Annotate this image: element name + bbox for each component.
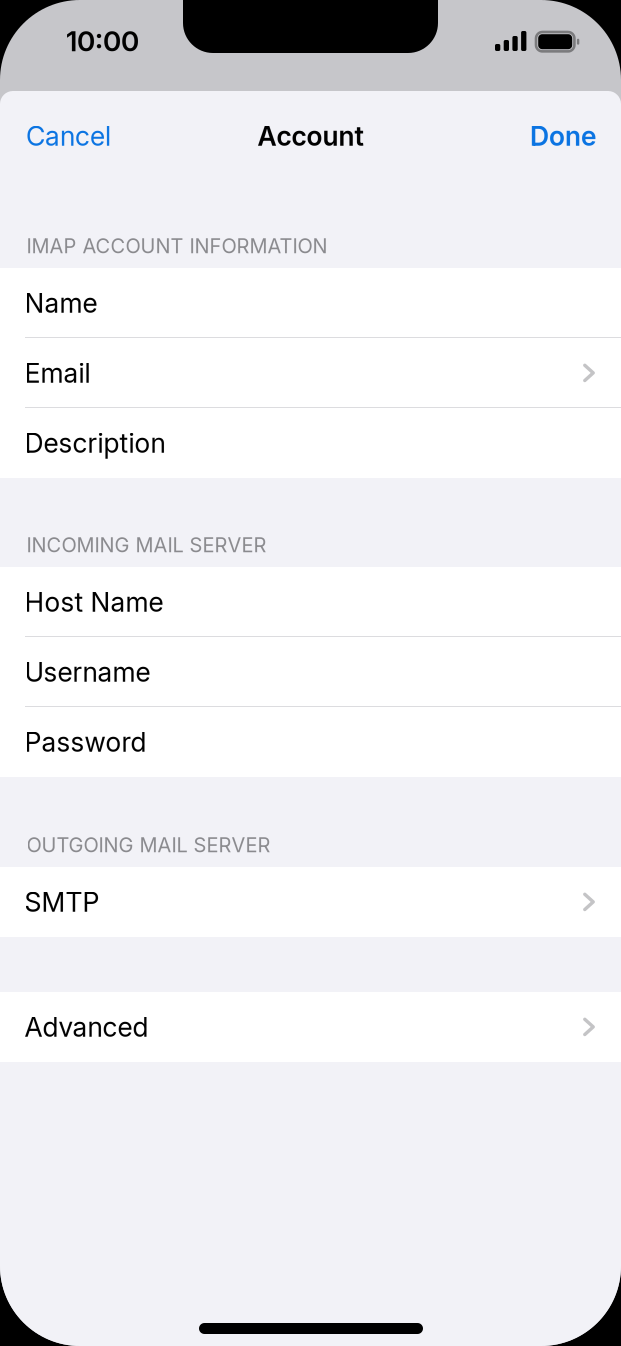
staticText: Password [24,726,146,758]
staticText: Host Name [24,586,163,618]
staticText: Cancel [26,120,111,152]
button[interactable]: Password [0,707,621,777]
button[interactable]: Name [0,268,621,338]
staticText: Done [530,120,596,152]
staticText: Name [24,287,97,319]
button[interactable]: Cancel [0,106,190,166]
button[interactable]: Host Name [0,567,621,637]
button[interactable]: Description [0,408,621,478]
button[interactable]: Username [0,637,621,707]
staticText: SMTP [24,886,99,918]
staticText: IMAP ACCOUNT INFORMATION [26,234,327,258]
button[interactable]: Advanced [0,992,621,1062]
staticText: INCOMING MAIL SERVER [26,533,266,557]
staticText: Account [257,120,363,152]
staticText: OUTGOING MAIL SERVER [26,833,270,857]
staticText: Username [24,656,150,688]
button[interactable]: Email [0,338,621,408]
button[interactable]: Done [431,106,621,166]
staticText: 10:00 [66,24,139,58]
staticText: Description [24,427,165,459]
button[interactable]: SMTP [0,867,621,937]
staticText: Advanced [24,1011,148,1043]
staticText: Email [24,357,90,389]
